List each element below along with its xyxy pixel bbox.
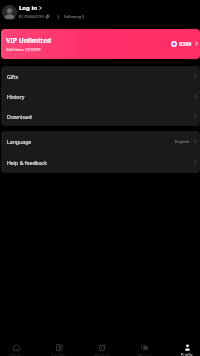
staticText: Profile [181,352,193,356]
button[interactable]: VIP Unlimited [1,29,200,59]
button[interactable]: Help & feedback [1,152,200,173]
button[interactable]: Gifts [1,66,200,86]
button[interactable]: History [1,86,200,106]
staticText: Member [94,352,110,356]
staticText: Language [7,138,32,145]
staticText: My List [138,352,151,356]
staticText: Home [10,352,22,356]
button[interactable]: For You [42,340,76,356]
button[interactable]: Profile [170,340,200,356]
button[interactable]: Log in [0,0,200,24]
button[interactable]: Language [1,131,200,152]
staticText: VIP Unlimited [6,36,52,45]
button[interactable]: Member [85,340,119,356]
staticText: ID 394362199 [19,14,44,19]
button[interactable]: Home [0,340,33,356]
button[interactable]: Download [1,106,200,126]
staticText: Help & feedback [7,159,47,166]
staticText: History [7,93,25,100]
button[interactable]: My List [127,340,161,356]
staticText: Valid time 13/24/99 [6,47,41,52]
staticText: Gifts [7,73,19,80]
staticText: Download [7,113,32,120]
staticText: 6300 [179,40,192,47]
staticText: For You [52,352,66,356]
staticText: Log in [19,4,38,12]
staticText: English [175,139,190,145]
staticText: Following 0 [64,14,85,19]
